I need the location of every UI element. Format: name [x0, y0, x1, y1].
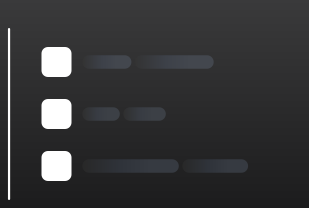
- button[interactable]: Loading item: [41, 47, 309, 77]
- button[interactable]: Loading item: [41, 151, 309, 181]
- button[interactable]: Loading item: [41, 99, 309, 129]
